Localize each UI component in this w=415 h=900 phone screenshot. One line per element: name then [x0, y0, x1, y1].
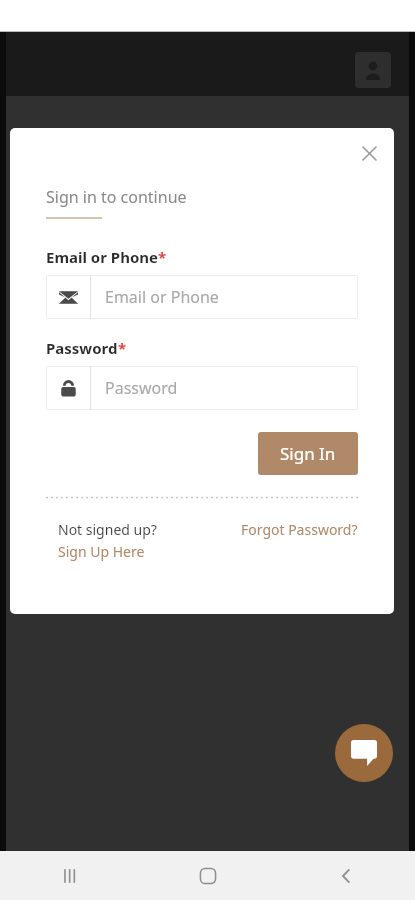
button[interactable]: Back: [277, 851, 415, 900]
button[interactable]: Email or Phone: [46, 275, 358, 319]
staticText: *: [118, 338, 127, 358]
staticText: Email or Phone: [105, 286, 219, 308]
button[interactable]: Sign In: [258, 432, 358, 475]
staticText: Sign in to continue: [46, 186, 187, 208]
staticText: Password: [105, 377, 178, 399]
staticText: Password: [46, 338, 118, 358]
staticText: Sign Up Here: [58, 542, 145, 561]
button[interactable]: Sign Up Here: [58, 542, 145, 561]
button[interactable]: Chat: [335, 724, 393, 782]
button[interactable]: Password: [46, 366, 358, 410]
staticText: Email or Phone: [46, 247, 158, 267]
staticText: *: [158, 247, 167, 267]
staticText: Forgot Password?: [241, 520, 358, 539]
button[interactable]: Profile: [355, 52, 391, 88]
staticText: Not signed up?: [58, 520, 157, 539]
staticText: Sign In: [280, 442, 336, 465]
button[interactable]: Home: [139, 851, 277, 900]
button[interactable]: Close: [352, 136, 386, 170]
button[interactable]: Recents: [0, 851, 139, 900]
button[interactable]: Forgot Password?: [241, 520, 358, 539]
